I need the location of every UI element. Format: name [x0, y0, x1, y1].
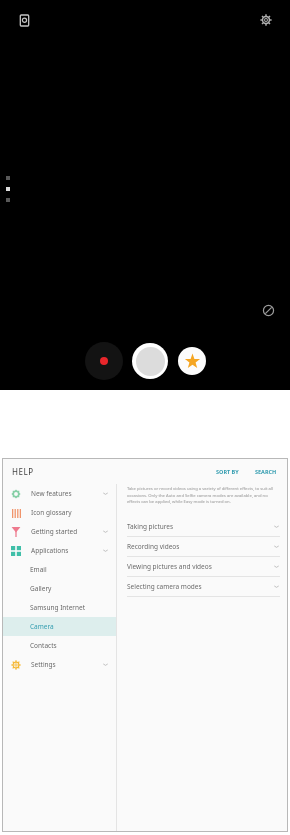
staticText: Take pictures or record videos using a v… — [127, 486, 280, 504]
button[interactable]: Getting started — [2, 522, 116, 541]
staticText: Viewing pictures and videos — [127, 562, 212, 571]
staticText: Camera — [30, 622, 54, 631]
staticText: Settings — [31, 660, 56, 669]
staticText: Gallery — [30, 584, 52, 593]
button[interactable]: Effects — [178, 347, 206, 375]
button[interactable]: Email — [2, 560, 116, 579]
button[interactable]: Viewing pictures and videos — [127, 557, 280, 577]
button[interactable]: Selecting camera modes — [127, 577, 280, 597]
staticText: SEARCH — [255, 468, 277, 475]
button[interactable]: Samsung Internet — [2, 598, 116, 617]
button[interactable]: Taking pictures — [127, 517, 280, 537]
button[interactable]: Gallery — [2, 579, 116, 598]
button[interactable]: Settings — [2, 655, 116, 674]
staticText: Taking pictures — [127, 522, 174, 531]
staticText: Applications — [31, 546, 69, 555]
button[interactable]: Record video — [85, 342, 123, 380]
staticText: New features — [31, 489, 72, 498]
staticText: Contacts — [30, 641, 57, 650]
button[interactable]: Capture mode — [12, 8, 36, 32]
staticText: Samsung Internet — [30, 603, 86, 612]
staticText: Icon glossary — [31, 508, 72, 517]
button[interactable]: SORT BY — [211, 465, 244, 478]
button[interactable]: Camera — [2, 617, 116, 636]
button[interactable]: Settings — [254, 8, 278, 32]
staticText: Email — [30, 565, 47, 574]
button[interactable]: Take picture — [132, 343, 168, 379]
button[interactable]: Applications — [2, 541, 116, 560]
button[interactable]: Contacts — [2, 636, 116, 655]
staticText: HELP — [12, 466, 34, 477]
button[interactable]: SEARCH — [250, 465, 282, 478]
button[interactable]: Icon glossary — [2, 503, 116, 522]
button[interactable]: No effect — [259, 301, 277, 319]
button[interactable]: Recording videos — [127, 537, 280, 557]
staticText: SORT BY — [216, 468, 239, 475]
button[interactable]: New features — [2, 484, 116, 503]
staticText: Selecting camera modes — [127, 582, 202, 591]
staticText: Getting started — [31, 527, 78, 536]
staticText: Recording videos — [127, 542, 180, 551]
